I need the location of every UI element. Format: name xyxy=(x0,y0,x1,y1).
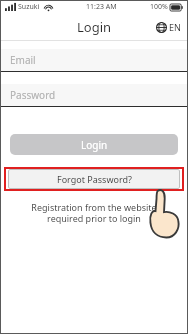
staticText: Registration from the website required p… xyxy=(12,201,176,225)
button[interactable]: Forgot Password? xyxy=(8,169,180,189)
staticText: Email xyxy=(10,53,36,67)
staticText: 100% xyxy=(150,2,168,12)
staticText: Login xyxy=(77,18,112,36)
button[interactable]: Email xyxy=(0,49,188,72)
staticText: Forgot Password? xyxy=(57,173,132,185)
staticText: EN xyxy=(169,21,181,33)
staticText: Suzuki xyxy=(18,2,40,12)
staticText: Password xyxy=(10,88,56,102)
button[interactable]: Login xyxy=(10,134,178,155)
button[interactable]: Password xyxy=(0,84,188,107)
staticText: Login xyxy=(81,138,108,152)
button[interactable]: Change language xyxy=(156,21,181,33)
staticText: 11:23 AM xyxy=(86,2,117,12)
